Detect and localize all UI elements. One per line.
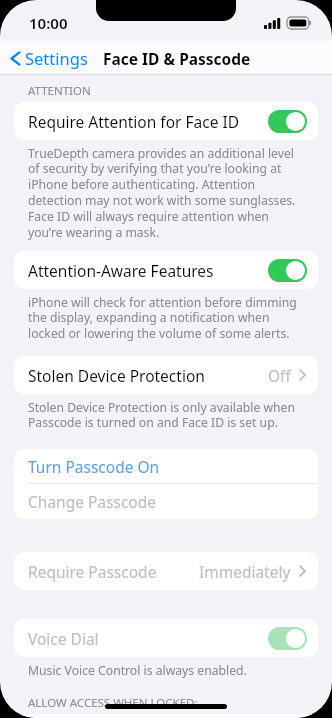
button[interactable]: Settings [0,43,94,73]
button[interactable]: Turn Passcode On [14,449,318,483]
staticText: Voice Dial [28,628,268,649]
button[interactable]: Require Attention for Face ID [14,102,318,140]
staticText: Require Attention for Face ID [28,111,268,132]
staticText: Music Voice Control is always enabled. [28,662,247,679]
button[interactable]: Switch on [268,259,307,282]
staticText: Off [268,365,291,386]
button[interactable]: Require Passcode [14,552,318,590]
staticText: Require Passcode [28,561,199,582]
staticText: Face ID & Passcode [103,48,251,69]
button[interactable]: Change Passcode [14,484,318,519]
staticText: ATTENTION [28,83,91,99]
staticText: Immediately [199,561,291,582]
staticText: TrueDepth camera provides an additional … [28,145,304,241]
staticText: Attention-Aware Features [28,260,268,281]
staticText: Settings [25,47,88,69]
staticText: ALLOW ACCESS WHEN LOCKED: [28,695,198,711]
button[interactable]: Voice Dial [14,619,318,657]
button[interactable]: Switch on [268,110,307,133]
staticText: Turn Passcode On [28,456,160,477]
staticText: iPhone will check for attention before d… [28,294,304,342]
button[interactable]: Attention-Aware Features [14,251,318,289]
staticText: Stolen Device Protection is only availab… [28,399,304,431]
staticText: Stolen Device Protection [28,365,268,386]
staticText: 10:00 [29,13,68,33]
staticText: Change Passcode [28,491,156,512]
button[interactable]: Stolen Device Protection [14,356,318,394]
button[interactable]: Today View and Search [14,714,318,718]
button[interactable]: Switch on [268,627,307,650]
